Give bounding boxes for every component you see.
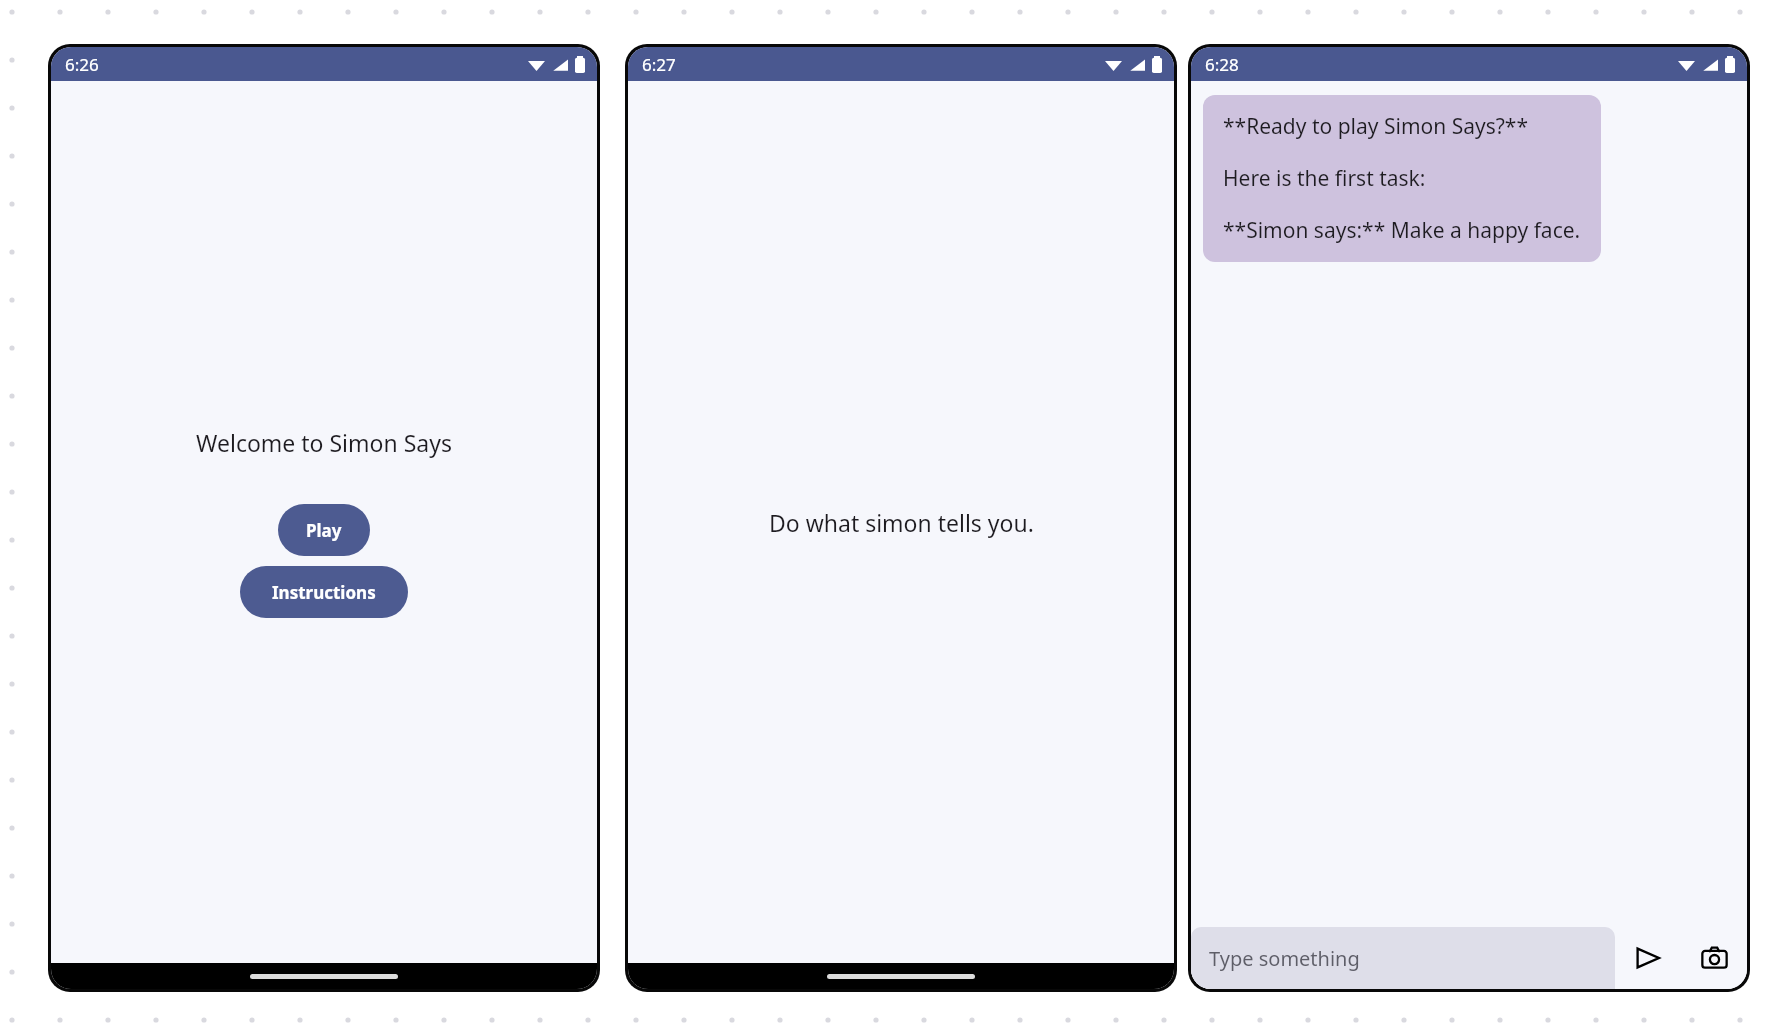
button[interactable]: Type something (1191, 927, 1615, 989)
button[interactable]: Send (1615, 927, 1681, 989)
staticText: **Ready to play Simon Says?** (1223, 112, 1529, 141)
staticText: Welcome to Simon Says (196, 427, 452, 458)
staticText: Do what simon tells you. (769, 507, 1034, 538)
staticText: Type something (1209, 945, 1360, 972)
staticText: Here is the first task: (1223, 164, 1426, 193)
staticText: Instructions (272, 581, 376, 604)
staticText: 6:27 (642, 53, 676, 76)
staticText: Play (306, 519, 342, 542)
button[interactable]: Instructions (240, 566, 408, 618)
button[interactable]: Camera (1681, 927, 1747, 989)
button[interactable]: Play (278, 504, 370, 556)
staticText: 6:28 (1205, 53, 1239, 76)
staticText: 6:26 (65, 53, 99, 76)
staticText: **Simon says:** Make a happy face. (1223, 216, 1581, 245)
button[interactable]: **Ready to play Simon Says?** (1203, 95, 1601, 262)
